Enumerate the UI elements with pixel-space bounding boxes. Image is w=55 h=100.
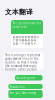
staticText: Thanks a lot	[10, 85, 25, 89]
staticText: This is a longer reply that spans severa…	[5, 53, 40, 71]
staticText: 文本翻译	[5, 8, 33, 16]
staticText: Sounds good	[16, 76, 35, 80]
staticText: 敏捷的棕色狐狸跳过 了那只懒狗的身体。 这是一个示例句子。	[12, 35, 39, 45]
staticText: The quick brown fox jumps over	[12, 21, 40, 29]
staticText: See you later today	[10, 91, 36, 95]
